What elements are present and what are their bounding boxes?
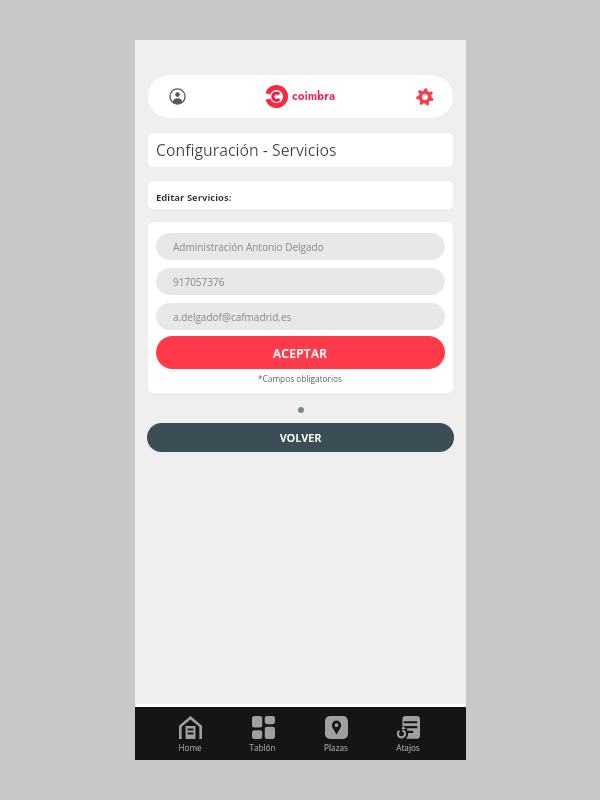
button[interactable]: ACEPTAR: [156, 336, 445, 369]
staticText: ACEPTAR: [273, 345, 328, 361]
staticText: Atajos: [396, 742, 420, 753]
button[interactable]: Administración Antonio Delgado: [156, 233, 445, 260]
staticText: 917057376: [173, 275, 225, 289]
button[interactable]: VOLVER: [147, 423, 454, 452]
staticText: Plazas: [324, 742, 348, 753]
staticText: Home: [178, 742, 202, 753]
staticText: VOLVER: [280, 431, 322, 445]
button[interactable]: Account: [156, 75, 199, 118]
staticText: a.delgadof@cafmadrid.es: [173, 310, 292, 324]
button[interactable]: Atajos: [372, 711, 444, 757]
staticText: Configuración - Servicios: [156, 139, 337, 161]
button[interactable]: Settings: [403, 75, 446, 118]
button[interactable]: Plazas: [299, 711, 372, 757]
staticText: *Campos obligatorios: [258, 373, 343, 384]
staticText: Editar Servicios:: [156, 191, 232, 204]
staticText: Administración Antonio Delgado: [173, 240, 324, 254]
staticText: Tablón: [249, 742, 276, 753]
button[interactable]: 917057376: [156, 268, 445, 295]
button[interactable]: Tablón: [226, 711, 299, 757]
button[interactable]: Configuración - Servicios: [148, 133, 453, 167]
button[interactable]: Home: [153, 711, 226, 757]
button[interactable]: a.delgadof@cafmadrid.es: [156, 303, 445, 330]
staticText: coimbra: [292, 88, 336, 105]
